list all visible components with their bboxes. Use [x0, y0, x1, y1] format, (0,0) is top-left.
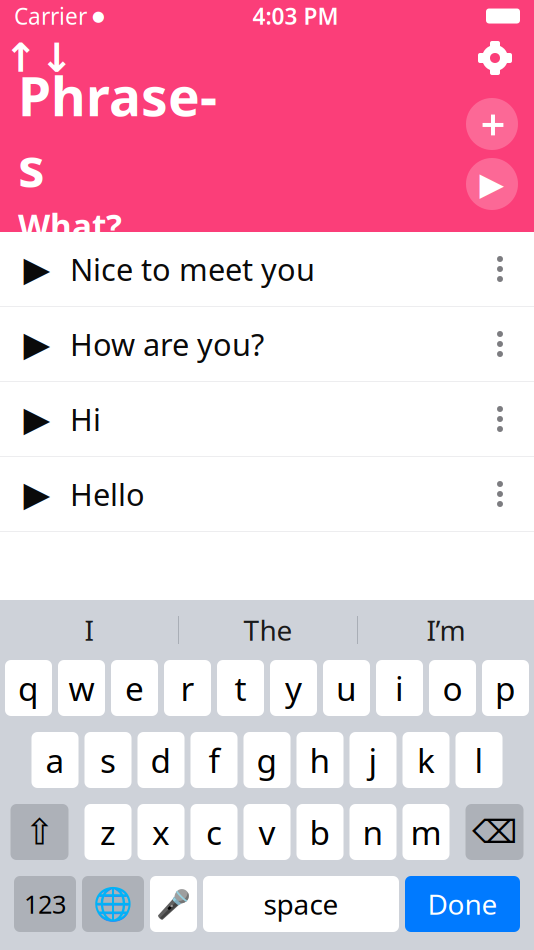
staticText: ⇧ — [24, 812, 54, 852]
button[interactable]: Reorder phrases — [12, 34, 66, 82]
staticText: f — [208, 738, 219, 782]
button[interactable]: n — [349, 804, 396, 860]
staticText: 🌐 — [93, 886, 133, 922]
button[interactable]: Settings — [468, 34, 522, 82]
button[interactable]: Play all — [466, 158, 518, 210]
button[interactable]: Done — [405, 876, 520, 932]
button[interactable]: More options for Nice to meet you — [480, 242, 520, 296]
staticText: t — [234, 666, 246, 710]
staticText: 123 — [24, 887, 66, 921]
button[interactable]: ▶ — [0, 232, 534, 306]
staticText: e — [125, 666, 144, 710]
staticText: ⌫ — [472, 814, 517, 850]
button[interactable]: x — [137, 804, 184, 860]
staticText: r — [180, 666, 194, 710]
button[interactable]: z — [84, 804, 131, 860]
staticText: 🎤 — [156, 888, 191, 920]
button[interactable]: w — [58, 660, 105, 716]
button[interactable]: Next keyboard — [82, 876, 144, 932]
staticText: I’m — [426, 611, 465, 649]
staticText: m — [410, 810, 441, 854]
button[interactable]: 123 — [14, 876, 76, 932]
staticText: c — [206, 810, 222, 854]
staticText: g — [256, 738, 277, 782]
staticText: ▶ — [479, 166, 504, 202]
button[interactable]: Add phrase — [466, 98, 518, 150]
button[interactable]: c — [190, 804, 237, 860]
staticText: ▶ — [23, 474, 50, 514]
button[interactable]: More options for Hi — [480, 392, 520, 446]
staticText: d — [150, 738, 171, 782]
button[interactable]: ▶ — [0, 457, 534, 531]
staticText: z — [100, 810, 116, 854]
staticText: u — [336, 666, 357, 710]
staticText: Hi — [70, 399, 101, 439]
button[interactable]: y — [270, 660, 317, 716]
staticText: 4:03 PM — [252, 1, 338, 31]
button[interactable]: The — [179, 604, 357, 656]
button[interactable]: ▶ — [0, 382, 534, 456]
button[interactable]: I — [0, 604, 178, 656]
button[interactable]: f — [190, 732, 237, 788]
staticText: n — [362, 810, 383, 854]
staticText: i — [395, 666, 404, 710]
staticText: ▶ — [23, 324, 50, 364]
button[interactable]: space — [203, 876, 399, 932]
staticText: space — [263, 885, 338, 923]
staticText: I — [84, 611, 93, 649]
button[interactable]: s — [84, 732, 131, 788]
button[interactable]: u — [323, 660, 370, 716]
staticText: v — [258, 810, 275, 854]
staticText: s — [100, 738, 116, 782]
staticText: l — [474, 738, 483, 782]
button[interactable]: l — [455, 732, 502, 788]
button[interactable]: j — [349, 732, 396, 788]
button[interactable]: ▶ — [0, 307, 534, 381]
button[interactable]: More options for Hello — [480, 467, 520, 521]
staticText: What? — [18, 204, 122, 248]
button[interactable]: o — [429, 660, 476, 716]
button[interactable]: Dictation — [150, 876, 197, 932]
staticText: ▶ — [23, 249, 50, 289]
staticText: a — [45, 738, 64, 782]
staticText: Carrier — [14, 1, 87, 31]
staticText: ↓ — [40, 35, 74, 81]
staticText: y — [285, 666, 302, 710]
button[interactable]: I’m — [358, 604, 534, 656]
staticText: Nice to meet you — [70, 249, 315, 289]
staticText: ＋ — [473, 101, 510, 147]
staticText: k — [417, 738, 435, 782]
staticText: Done — [427, 885, 497, 923]
staticText: q — [18, 666, 39, 710]
staticText: How are you? — [70, 324, 264, 364]
button[interactable]: t — [217, 660, 264, 716]
staticText: The — [243, 611, 292, 649]
button[interactable]: m — [402, 804, 449, 860]
staticText: p — [495, 666, 516, 710]
staticText: ▶ — [23, 399, 50, 439]
button[interactable]: d — [137, 732, 184, 788]
button[interactable]: p — [482, 660, 529, 716]
button[interactable]: Delete — [465, 804, 523, 860]
staticText: h — [309, 738, 330, 782]
button[interactable]: Shift — [10, 804, 68, 860]
button[interactable]: i — [376, 660, 423, 716]
button[interactable]: g — [243, 732, 290, 788]
button[interactable]: b — [296, 804, 343, 860]
staticText: o — [442, 666, 462, 710]
staticText: j — [368, 738, 377, 782]
button[interactable]: k — [402, 732, 449, 788]
button[interactable]: a — [31, 732, 78, 788]
staticText: ● — [87, 8, 105, 24]
button[interactable]: More options for How are you? — [480, 317, 520, 371]
staticText: Phrases — [18, 60, 217, 202]
button[interactable]: q — [5, 660, 52, 716]
staticText: w — [68, 666, 94, 710]
staticText: x — [152, 810, 170, 854]
button[interactable]: v — [243, 804, 290, 860]
staticText: Hello — [70, 474, 145, 514]
button[interactable]: r — [164, 660, 211, 716]
button[interactable]: e — [111, 660, 158, 716]
staticText: ↑ — [4, 35, 38, 81]
button[interactable]: h — [296, 732, 343, 788]
